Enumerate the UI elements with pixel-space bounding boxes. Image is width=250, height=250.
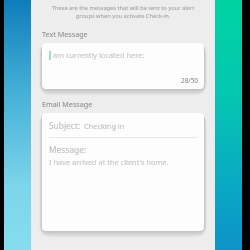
staticText: am currently located here: <box>53 50 145 60</box>
staticText: Email Message <box>42 99 93 109</box>
staticText: Subject: <box>49 120 81 131</box>
button[interactable]: Text message input <box>42 43 204 89</box>
staticText: Text Message <box>42 29 88 39</box>
button[interactable]: Email message input <box>42 113 204 231</box>
staticText: Checking in <box>84 121 125 131</box>
staticText: 28/50 <box>181 76 198 85</box>
staticText: These are the messages that will be sent… <box>44 4 202 20</box>
staticText: I have arrived at the client's home. <box>49 157 169 167</box>
staticText: Message: <box>49 144 87 155</box>
